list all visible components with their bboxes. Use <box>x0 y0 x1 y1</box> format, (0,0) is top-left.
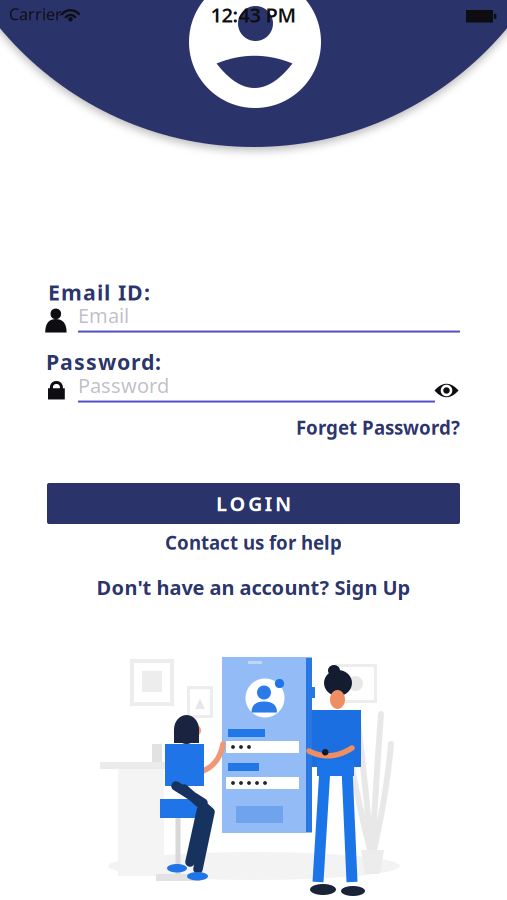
button[interactable]: Contact us for help <box>165 530 342 555</box>
staticText: LOGIN <box>216 490 291 517</box>
button[interactable] <box>434 381 459 399</box>
staticText: Password: <box>46 347 161 376</box>
staticText: Don't have an account? Sign Up <box>96 574 410 601</box>
staticText: Contact us for help <box>165 530 342 555</box>
staticText: Forget Password? <box>296 415 460 440</box>
staticText: Password <box>78 372 169 399</box>
button[interactable]: Email <box>45 302 460 333</box>
button[interactable]: LOGIN <box>47 483 460 524</box>
button[interactable]: Don't have an account? Sign Up <box>96 574 410 601</box>
staticText: Carrier <box>9 3 62 25</box>
staticText: Email <box>78 302 129 329</box>
button[interactable]: Password <box>48 372 435 403</box>
staticText: Email ID: <box>48 278 150 306</box>
staticText: 12:43 PM <box>210 1 296 28</box>
button[interactable]: Forget Password? <box>296 415 460 440</box>
